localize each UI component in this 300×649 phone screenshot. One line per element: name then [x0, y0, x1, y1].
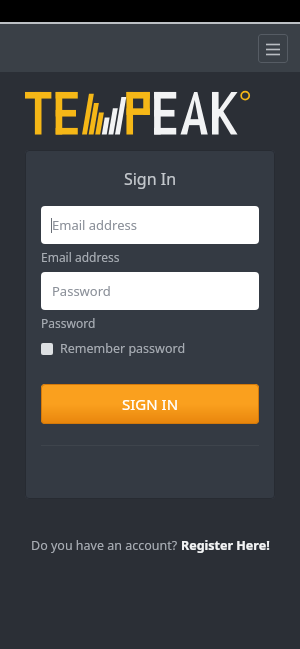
- button[interactable]: Menu: [258, 34, 288, 63]
- staticText: Password: [41, 315, 96, 331]
- staticText: Email address: [52, 216, 137, 234]
- staticText: Sign In: [41, 168, 259, 190]
- button[interactable]: Email address: [41, 206, 259, 244]
- button[interactable]: Do you have an account?: [0, 537, 300, 554]
- button[interactable]: Password: [41, 272, 259, 310]
- staticText: Register Here!: [181, 537, 270, 554]
- staticText: SIGN IN: [122, 394, 179, 414]
- button[interactable]: Remember password: [41, 338, 186, 359]
- staticText: Remember password: [60, 340, 186, 357]
- staticText: Password: [52, 282, 111, 300]
- staticText: Do you have an account?: [31, 537, 181, 554]
- staticText: Email address: [41, 249, 120, 265]
- button[interactable]: SIGN IN: [41, 384, 259, 424]
